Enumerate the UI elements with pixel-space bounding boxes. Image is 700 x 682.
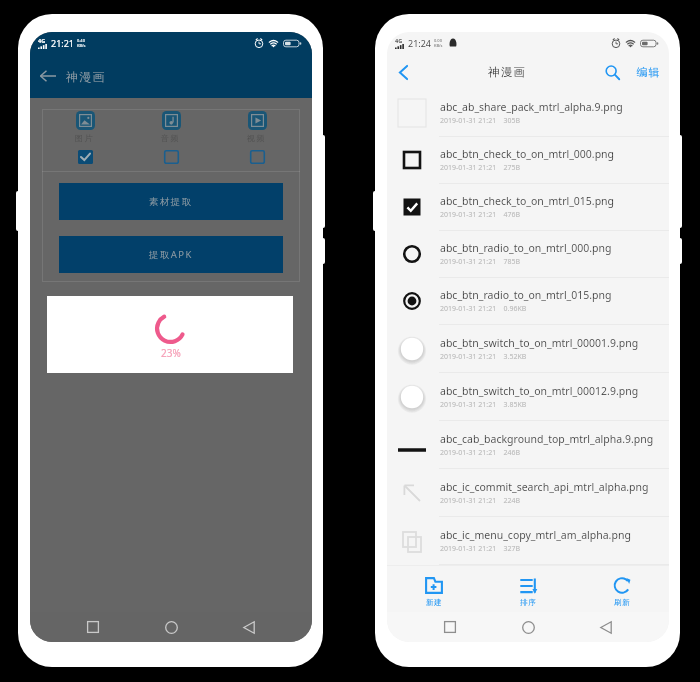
button[interactable]: 图片 bbox=[75, 109, 95, 164]
button[interactable]: 排序 bbox=[481, 566, 575, 612]
staticText: 2019-01-31 21:21 3.85KB bbox=[440, 400, 527, 410]
staticText: abc_btn_radio_to_on_mtrl_000.png bbox=[440, 241, 612, 255]
staticText: KB/s bbox=[77, 43, 86, 48]
staticText: 2019-01-31 21:21 0.96KB bbox=[440, 304, 527, 314]
staticText: 图片 bbox=[75, 133, 95, 143]
staticText: 新建 bbox=[426, 598, 443, 607]
staticText: 2019-01-31 21:21 224B bbox=[440, 496, 521, 506]
staticText: 0.00 bbox=[434, 38, 442, 43]
staticText: 神漫画 bbox=[488, 65, 527, 79]
staticText: 2019-01-31 21:21 476B bbox=[440, 210, 521, 220]
staticText: 素材提取 bbox=[149, 196, 193, 208]
staticText: abc_cab_background_top_mtrl_alpha.9.png bbox=[440, 432, 654, 446]
staticText: 4G bbox=[395, 37, 403, 44]
button[interactable]: abc_btn_check_to_on_mtrl_015.png bbox=[387, 184, 669, 231]
button[interactable]: 新建 bbox=[387, 566, 481, 612]
staticText: 排序 bbox=[520, 598, 537, 607]
staticText: 2019-01-31 21:21 785B bbox=[440, 257, 521, 267]
staticText: abc_btn_switch_to_on_mtrl_00001.9.png bbox=[440, 336, 639, 350]
staticText: 神漫画 bbox=[66, 69, 106, 84]
button[interactable]: Recents bbox=[78, 612, 108, 642]
staticText: 2019-01-31 21:21 275B bbox=[440, 163, 521, 173]
button[interactable]: abc_cab_background_top_mtrl_alpha.9.png bbox=[387, 421, 669, 469]
staticText: 2019-01-31 21:21 327B bbox=[440, 544, 521, 554]
button[interactable]: 素材提取 bbox=[59, 183, 283, 220]
staticText: 21:21 bbox=[51, 37, 75, 49]
staticText: abc_btn_check_to_on_mtrl_015.png bbox=[440, 194, 615, 208]
staticText: 2019-01-31 21:21 246B bbox=[440, 448, 521, 458]
staticText: 视频 bbox=[247, 133, 267, 143]
button[interactable]: Back bbox=[591, 612, 621, 642]
staticText: KB/s bbox=[434, 43, 443, 48]
staticText: 音频 bbox=[161, 133, 181, 143]
button[interactable]: abc_ic_menu_copy_mtrl_am_alpha.png bbox=[387, 517, 669, 565]
staticText: abc_btn_check_to_on_mtrl_000.png bbox=[440, 147, 615, 161]
button[interactable]: abc_ab_share_pack_mtrl_alpha.9.png bbox=[387, 90, 669, 137]
staticText: 21:24 bbox=[408, 37, 432, 49]
staticText: abc_btn_radio_to_on_mtrl_015.png bbox=[440, 288, 612, 302]
staticText: 提取APK bbox=[149, 248, 193, 261]
button[interactable]: Back bbox=[387, 54, 419, 90]
staticText: 2019-01-31 21:21 305B bbox=[440, 116, 521, 126]
staticText: abc_btn_switch_to_on_mtrl_00012.9.png bbox=[440, 384, 639, 398]
button[interactable]: Recents bbox=[435, 612, 465, 642]
staticText: abc_ab_share_pack_mtrl_alpha.9.png bbox=[440, 100, 623, 114]
button[interactable]: abc_ic_commit_search_api_mtrl_alpha.png bbox=[387, 469, 669, 517]
button[interactable]: 刷新 bbox=[575, 566, 669, 612]
button[interactable]: 视频 bbox=[247, 109, 267, 164]
button[interactable]: Back bbox=[234, 612, 264, 642]
button[interactable]: Home bbox=[156, 612, 186, 642]
button[interactable]: abc_btn_switch_to_on_mtrl_00001.9.png bbox=[387, 325, 669, 373]
button[interactable]: Search bbox=[597, 57, 627, 87]
button[interactable]: 音频 bbox=[161, 109, 181, 164]
staticText: 0.40 bbox=[77, 38, 85, 43]
button[interactable]: abc_btn_radio_to_on_mtrl_015.png bbox=[387, 278, 669, 325]
staticText: 23% bbox=[161, 346, 181, 360]
staticText: 刷新 bbox=[614, 598, 631, 607]
staticText: 编辑 bbox=[636, 65, 660, 79]
staticText: abc_ic_menu_copy_mtrl_am_alpha.png bbox=[440, 528, 631, 542]
staticText: 4G bbox=[38, 37, 46, 44]
button[interactable]: abc_btn_switch_to_on_mtrl_00012.9.png bbox=[387, 373, 669, 421]
button[interactable]: 提取APK bbox=[59, 236, 283, 273]
button[interactable]: Back bbox=[36, 66, 60, 86]
button[interactable]: Home bbox=[513, 612, 543, 642]
button[interactable]: abc_btn_radio_to_on_mtrl_000.png bbox=[387, 231, 669, 278]
staticText: 2019-01-31 21:21 3.52KB bbox=[440, 352, 527, 362]
staticText: abc_ic_commit_search_api_mtrl_alpha.png bbox=[440, 480, 649, 494]
button[interactable]: abc_btn_check_to_on_mtrl_000.png bbox=[387, 137, 669, 184]
button[interactable]: 编辑 bbox=[629, 59, 667, 85]
